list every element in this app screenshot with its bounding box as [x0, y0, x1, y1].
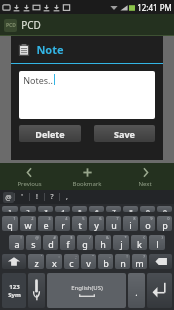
staticText: m: [135, 257, 144, 269]
button[interactable]: 123: [2, 273, 26, 308]
button[interactable]: $: [60, 235, 75, 250]
button[interactable]: ;: [64, 254, 79, 269]
button[interactable]: ?: [132, 254, 147, 269]
staticText: a: [14, 238, 20, 250]
button[interactable]: *: [113, 235, 129, 250]
staticText: 9: [150, 216, 153, 221]
staticText: PCD: [21, 18, 41, 32]
button[interactable]: 1: [2, 206, 18, 212]
button[interactable]: @: [26, 235, 41, 250]
button[interactable]: 6: [89, 206, 104, 212]
staticText: ?: [143, 254, 145, 259]
staticText: 7: [116, 216, 119, 221]
button[interactable]: Bookmark: [58, 163, 116, 190]
staticText: x: [52, 257, 57, 269]
staticText: 123: [9, 283, 20, 291]
button[interactable]: 7: [106, 216, 121, 231]
staticText: .: [135, 286, 138, 298]
staticText: Next: [138, 180, 152, 188]
button[interactable]: English(US): [47, 273, 126, 308]
button[interactable]: 5: [72, 216, 87, 231]
staticText: b: [103, 257, 109, 269]
button[interactable]: &: [95, 235, 111, 250]
button[interactable]: -: [98, 254, 113, 269]
staticText: *: [124, 235, 127, 240]
button[interactable]: ': [15, 190, 29, 204]
staticText: 6: [95, 208, 99, 212]
staticText: ': [41, 254, 42, 259]
staticText: Note: [36, 42, 64, 57]
button[interactable]: #: [43, 235, 58, 250]
button[interactable]: 9: [140, 206, 155, 212]
staticText: @: [5, 193, 12, 203]
staticText: n: [120, 257, 126, 269]
button[interactable]: 3: [38, 216, 53, 231]
button[interactable]: Shift: [2, 254, 26, 269]
button[interactable]: ": [81, 254, 96, 269]
staticText: h: [100, 238, 106, 250]
button[interactable]: 8: [123, 216, 138, 231]
button[interactable]: 1: [2, 216, 18, 231]
staticText: -: [109, 254, 111, 259]
staticText: 4: [65, 216, 68, 221]
staticText: z: [34, 257, 39, 269]
staticText: #: [53, 235, 56, 240]
button[interactable]: ,: [60, 190, 74, 204]
button[interactable]: 3: [38, 206, 53, 212]
button[interactable]: @: [3, 192, 14, 203]
staticText: Sym: [8, 291, 21, 299]
button[interactable]: (: [131, 235, 147, 250]
staticText: 3: [44, 208, 48, 212]
button[interactable]: ?: [45, 190, 59, 204]
button[interactable]: 8: [123, 206, 138, 212]
staticText: ?: [50, 192, 54, 202]
button[interactable]: 4: [55, 216, 70, 231]
staticText: Delete: [35, 128, 65, 140]
button[interactable]: ): [149, 235, 165, 250]
button[interactable]: 0: [157, 206, 172, 212]
button[interactable]: 2: [20, 216, 36, 231]
button[interactable]: Enter: [147, 273, 172, 308]
staticText: $: [70, 235, 73, 240]
staticText: !: [20, 235, 22, 240]
staticText: !: [126, 254, 128, 259]
staticText: ,: [66, 192, 68, 202]
staticText: 2: [31, 216, 34, 221]
button[interactable]: Next: [116, 163, 174, 190]
staticText: 3: [48, 216, 51, 221]
staticText: j: [120, 238, 123, 250]
button[interactable]: .: [128, 273, 145, 308]
button[interactable]: Delete: [19, 125, 81, 142]
button[interactable]: !: [115, 254, 130, 269]
button[interactable]: Notes..: [19, 71, 155, 119]
button[interactable]: ': [28, 254, 44, 269]
staticText: !: [36, 192, 38, 202]
button[interactable]: 6: [89, 216, 104, 231]
button[interactable]: 4: [55, 206, 70, 212]
button[interactable]: 5: [72, 206, 87, 212]
button[interactable]: Voice input: [28, 273, 45, 308]
staticText: 9: [146, 208, 150, 212]
staticText: ': [21, 192, 23, 202]
button[interactable]: :: [46, 254, 62, 269]
button[interactable]: Save: [94, 125, 155, 142]
button[interactable]: /: [77, 235, 93, 250]
button[interactable]: 9: [140, 216, 155, 231]
button[interactable]: Backspace: [149, 254, 172, 269]
staticText: ;: [75, 254, 77, 259]
button[interactable]: Previous: [0, 163, 58, 190]
button[interactable]: 0: [157, 216, 172, 231]
staticText: c: [69, 257, 74, 269]
staticText: 4: [61, 208, 65, 212]
button[interactable]: !: [30, 190, 44, 204]
staticText: ": [92, 254, 94, 259]
staticText: f: [66, 238, 70, 250]
button[interactable]: !: [9, 235, 24, 250]
staticText: 5: [82, 216, 85, 221]
staticText: 5: [78, 208, 82, 212]
staticText: 0: [167, 216, 170, 221]
staticText: (: [143, 235, 145, 240]
staticText: PCD: [6, 22, 16, 29]
button[interactable]: 7: [106, 206, 121, 212]
button[interactable]: 2: [20, 206, 36, 212]
